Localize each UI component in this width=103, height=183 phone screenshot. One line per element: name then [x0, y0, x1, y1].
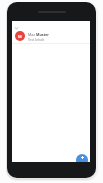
- staticText: M: [18, 34, 22, 39]
- button[interactable]: [76, 154, 88, 162]
- staticText: Test Inhalt: [28, 37, 45, 41]
- button[interactable]: M: [12, 31, 90, 46]
- staticText: Max Muster: [28, 32, 49, 37]
